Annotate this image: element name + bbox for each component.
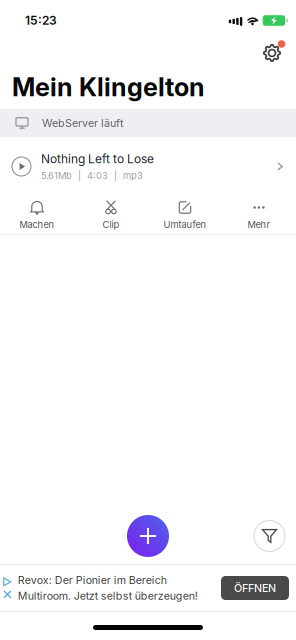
button[interactable]: Revox: Der Pionier im Bereich <box>0 565 296 611</box>
staticText: ÖFFNEN <box>234 582 276 594</box>
button[interactable]: Umtaufen <box>148 196 222 234</box>
staticText: Umtaufen <box>163 219 206 230</box>
staticText: Revox: Der Pionier im Bereich <box>18 574 167 586</box>
staticText: 15:23 <box>25 13 57 28</box>
button[interactable]: Add ringtone <box>127 515 169 557</box>
button[interactable]: Settings <box>257 41 287 65</box>
staticText: Nothing Left to Lose <box>41 152 154 166</box>
button[interactable]: Machen <box>0 196 74 234</box>
staticText: Machen <box>19 219 54 230</box>
button[interactable]: Filter <box>254 520 285 551</box>
button[interactable]: Mehr <box>222 196 296 234</box>
staticText: Clip <box>102 219 119 230</box>
button[interactable]: Nothing Left to Lose <box>0 137 296 196</box>
staticText: Mehr <box>247 219 270 230</box>
staticText: WebServer läuft <box>42 117 123 129</box>
button[interactable]: Clip <box>74 196 148 234</box>
staticText: Multiroom. Jetzt selbst überzeugen! <box>18 589 198 602</box>
staticText: Mein Klingelton <box>12 72 205 102</box>
staticText: 5.61Mb | 4:03 | mp3 <box>41 170 143 181</box>
